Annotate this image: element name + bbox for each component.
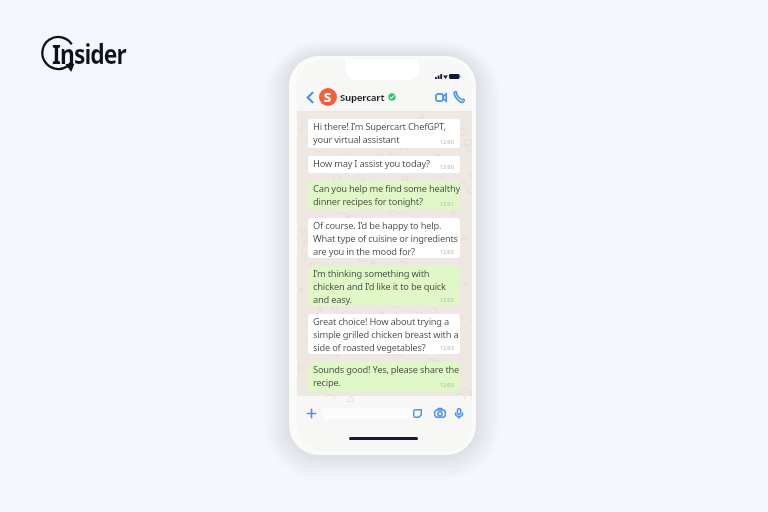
button[interactable]: I’m thinking something with xyxy=(308,266,460,306)
staticText: S xyxy=(324,88,332,106)
staticText: side of roasted vegetables? xyxy=(313,341,426,354)
button[interactable]: Can you help me find some healthy xyxy=(308,181,460,210)
staticText: Supercart xyxy=(340,91,385,104)
staticText: chicken and I’d like it to be quick xyxy=(313,280,446,293)
staticText: simple grilled chicken breast with a xyxy=(313,328,459,341)
staticText: your virtual assistant xyxy=(313,133,400,146)
button[interactable]: Voice message xyxy=(455,408,463,419)
button[interactable]: Sounds good! Yes, please share the xyxy=(308,362,460,391)
staticText: Can you help me find some healthy xyxy=(313,182,460,195)
button[interactable]: Stickers xyxy=(413,409,422,418)
staticText: 12:01 xyxy=(440,200,454,207)
button[interactable]: Camera xyxy=(434,408,446,418)
button[interactable]: S xyxy=(319,85,396,109)
staticText: I’m thinking something with xyxy=(313,267,430,280)
staticText: Insider xyxy=(52,36,126,71)
staticText: How may I assist you today? xyxy=(313,157,430,170)
staticText: Great choice! How about trying a xyxy=(313,315,450,328)
staticText: and easy. xyxy=(313,293,352,306)
button[interactable]: Hi there! I’m Supercart ChefGPT, xyxy=(308,119,460,148)
staticText: Hi there! I’m Supercart ChefGPT, xyxy=(313,120,446,133)
staticText: 12:03 xyxy=(440,344,454,351)
button[interactable]: Back xyxy=(304,88,316,106)
staticText: dinner recipes for tonight? xyxy=(313,195,423,208)
staticText: What type of cuisine or ingredients xyxy=(313,232,458,245)
staticText: 12:02 xyxy=(440,296,454,303)
button[interactable]: Voice call xyxy=(451,89,467,105)
staticText: 12:02 xyxy=(440,248,454,255)
staticText: are you in the mood for? xyxy=(313,245,415,258)
staticText: 12:00 xyxy=(440,138,454,145)
button[interactable]: Attach xyxy=(303,405,319,421)
button[interactable] xyxy=(322,408,425,419)
button[interactable]: How may I assist you today? xyxy=(308,156,460,173)
staticText: recipe. xyxy=(313,376,341,389)
button[interactable]: Video call xyxy=(433,89,449,105)
staticText: Of course. I’d be happy to help. xyxy=(313,219,442,232)
staticText: Sounds good! Yes, please share the xyxy=(313,363,460,376)
staticText: 12:03 xyxy=(440,381,454,388)
staticText: 12:00 xyxy=(440,163,454,170)
button[interactable]: Great choice! How about trying a xyxy=(308,314,460,354)
button[interactable]: Of course. I’d be happy to help. xyxy=(308,218,460,258)
